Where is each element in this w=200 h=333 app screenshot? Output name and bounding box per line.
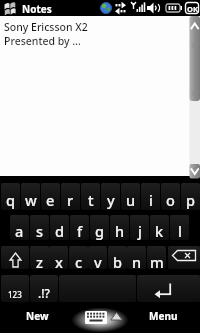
staticText: r bbox=[67, 190, 74, 210]
staticText: v bbox=[94, 252, 102, 272]
staticText: a bbox=[15, 221, 24, 241]
button[interactable]: v bbox=[88, 246, 107, 269]
staticText: Notes bbox=[22, 2, 52, 16]
staticText: e bbox=[46, 190, 55, 210]
staticText: k bbox=[155, 221, 164, 241]
staticText: g bbox=[95, 221, 104, 241]
staticText: b bbox=[113, 252, 122, 272]
staticText: Menu bbox=[149, 309, 178, 323]
button[interactable]: b bbox=[108, 246, 127, 269]
button[interactable]: s bbox=[30, 215, 49, 240]
button[interactable]: y bbox=[101, 183, 120, 210]
button[interactable]: r bbox=[61, 183, 80, 210]
staticText: y bbox=[107, 190, 115, 210]
button[interactable] bbox=[1, 246, 29, 269]
button[interactable]: o bbox=[161, 183, 180, 210]
button[interactable]: e bbox=[41, 183, 60, 210]
button[interactable]: q bbox=[1, 183, 20, 210]
button[interactable]: z bbox=[30, 246, 49, 269]
button[interactable]: 123 bbox=[1, 275, 29, 302]
button[interactable]: g bbox=[90, 215, 109, 240]
staticText: Sony Ericsson X2 bbox=[4, 20, 88, 34]
button[interactable]: New bbox=[4, 300, 70, 333]
staticText: m bbox=[150, 252, 164, 272]
button[interactable]: Menu bbox=[130, 300, 196, 333]
staticText: w bbox=[25, 190, 37, 210]
staticText: x bbox=[55, 252, 63, 272]
button[interactable]: l bbox=[170, 215, 189, 240]
button[interactable] bbox=[168, 246, 200, 269]
button[interactable]: h bbox=[110, 215, 129, 240]
button[interactable]: f bbox=[70, 215, 89, 240]
staticText: t bbox=[88, 190, 94, 210]
staticText: .!? bbox=[38, 285, 50, 301]
staticText: New bbox=[26, 309, 49, 323]
staticText: q bbox=[6, 190, 15, 210]
button[interactable]: Notes bbox=[0, 0, 200, 16]
button[interactable]: x bbox=[49, 246, 68, 269]
staticText: n bbox=[132, 252, 142, 272]
button[interactable]: d bbox=[50, 215, 69, 240]
staticText: c bbox=[75, 252, 83, 272]
button[interactable]: u bbox=[121, 183, 140, 210]
staticText: d bbox=[55, 221, 64, 241]
button[interactable]: p bbox=[181, 183, 200, 210]
staticText: p bbox=[186, 190, 195, 210]
staticText: l bbox=[178, 221, 182, 241]
button[interactable]: t bbox=[81, 183, 100, 210]
staticText: OK bbox=[187, 4, 198, 14]
staticText: o bbox=[166, 190, 175, 210]
staticText: f bbox=[77, 221, 83, 241]
staticText: z bbox=[36, 252, 43, 272]
button[interactable]: .!? bbox=[30, 275, 58, 302]
button[interactable] bbox=[80, 304, 126, 330]
button[interactable]: c bbox=[69, 246, 88, 269]
staticText: 123 bbox=[8, 289, 22, 300]
button[interactable]: a bbox=[10, 215, 29, 240]
button[interactable]: n bbox=[127, 246, 146, 269]
staticText: h bbox=[115, 221, 125, 241]
button[interactable] bbox=[137, 275, 200, 302]
staticText: j bbox=[138, 221, 142, 241]
staticText: s bbox=[36, 221, 44, 241]
button[interactable]: w bbox=[21, 183, 40, 210]
staticText: i bbox=[149, 190, 153, 210]
button[interactable]: k bbox=[150, 215, 169, 240]
staticText: u bbox=[126, 190, 136, 210]
staticText: Presented by ... bbox=[4, 34, 81, 48]
button[interactable]: m bbox=[147, 246, 166, 269]
button[interactable]: j bbox=[130, 215, 149, 240]
button[interactable] bbox=[59, 275, 136, 302]
button[interactable]: i bbox=[141, 183, 160, 210]
